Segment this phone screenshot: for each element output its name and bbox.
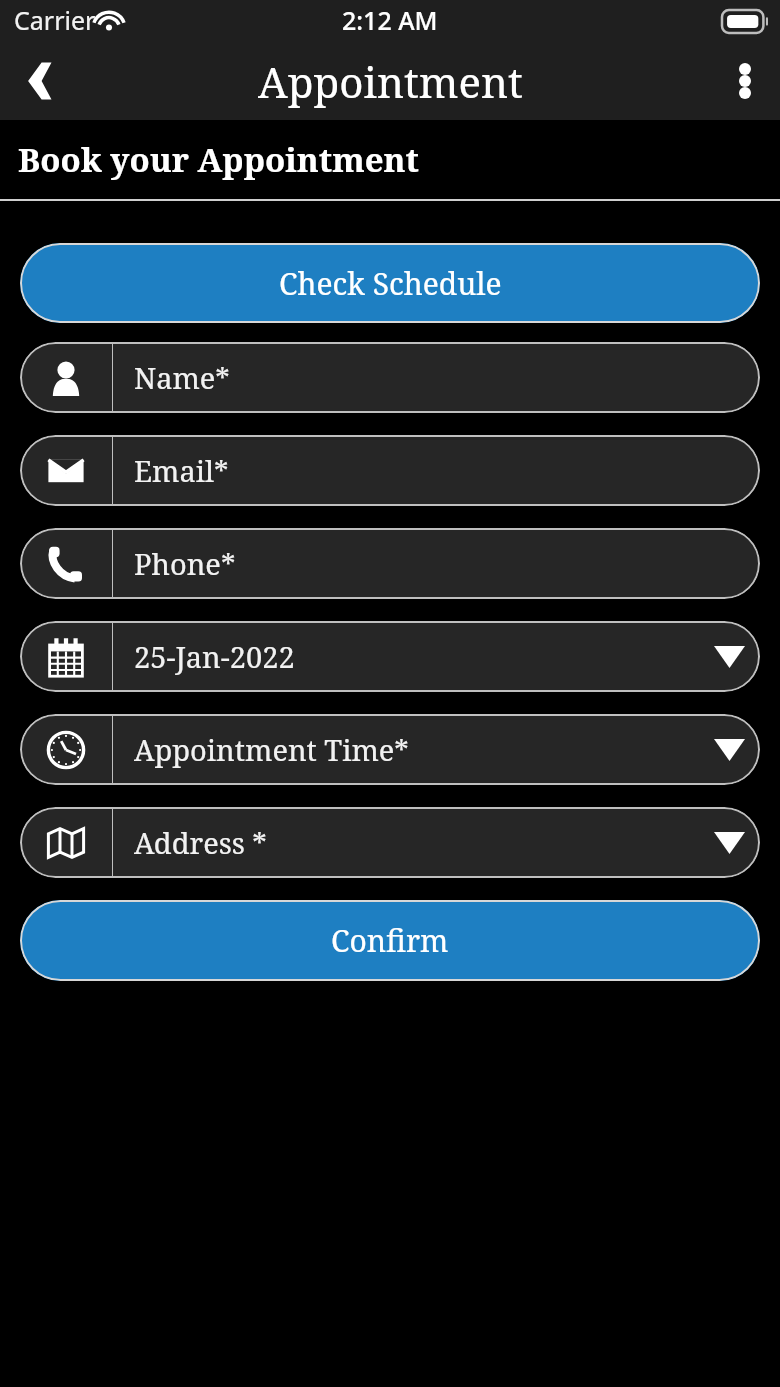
button[interactable]: Check Schedule bbox=[20, 243, 760, 323]
staticText: 2:12 AM bbox=[342, 3, 438, 37]
staticText: Carrier bbox=[14, 3, 96, 37]
button[interactable]: Email* bbox=[20, 435, 760, 506]
staticText: Check Schedule bbox=[279, 263, 502, 304]
staticText: 25-Jan-2022 bbox=[134, 637, 295, 676]
button[interactable]: More options bbox=[710, 42, 780, 120]
button[interactable]: Confirm bbox=[20, 900, 760, 981]
staticText: Phone* bbox=[134, 544, 236, 583]
button[interactable]: Address * bbox=[20, 807, 760, 878]
staticText: Name* bbox=[134, 358, 230, 397]
button[interactable]: Back bbox=[0, 42, 76, 120]
button[interactable]: Phone* bbox=[20, 528, 760, 599]
staticText: Appointment bbox=[258, 53, 523, 110]
button[interactable]: 25-Jan-2022 bbox=[20, 621, 760, 692]
button[interactable]: Appointment Time* bbox=[20, 714, 760, 785]
button[interactable]: Name* bbox=[20, 342, 760, 413]
staticText: Confirm bbox=[331, 920, 449, 961]
staticText: Book your Appointment bbox=[18, 137, 419, 182]
staticText: Email* bbox=[134, 451, 229, 490]
staticText: Address * bbox=[134, 823, 267, 862]
staticText: Appointment Time* bbox=[134, 730, 409, 769]
